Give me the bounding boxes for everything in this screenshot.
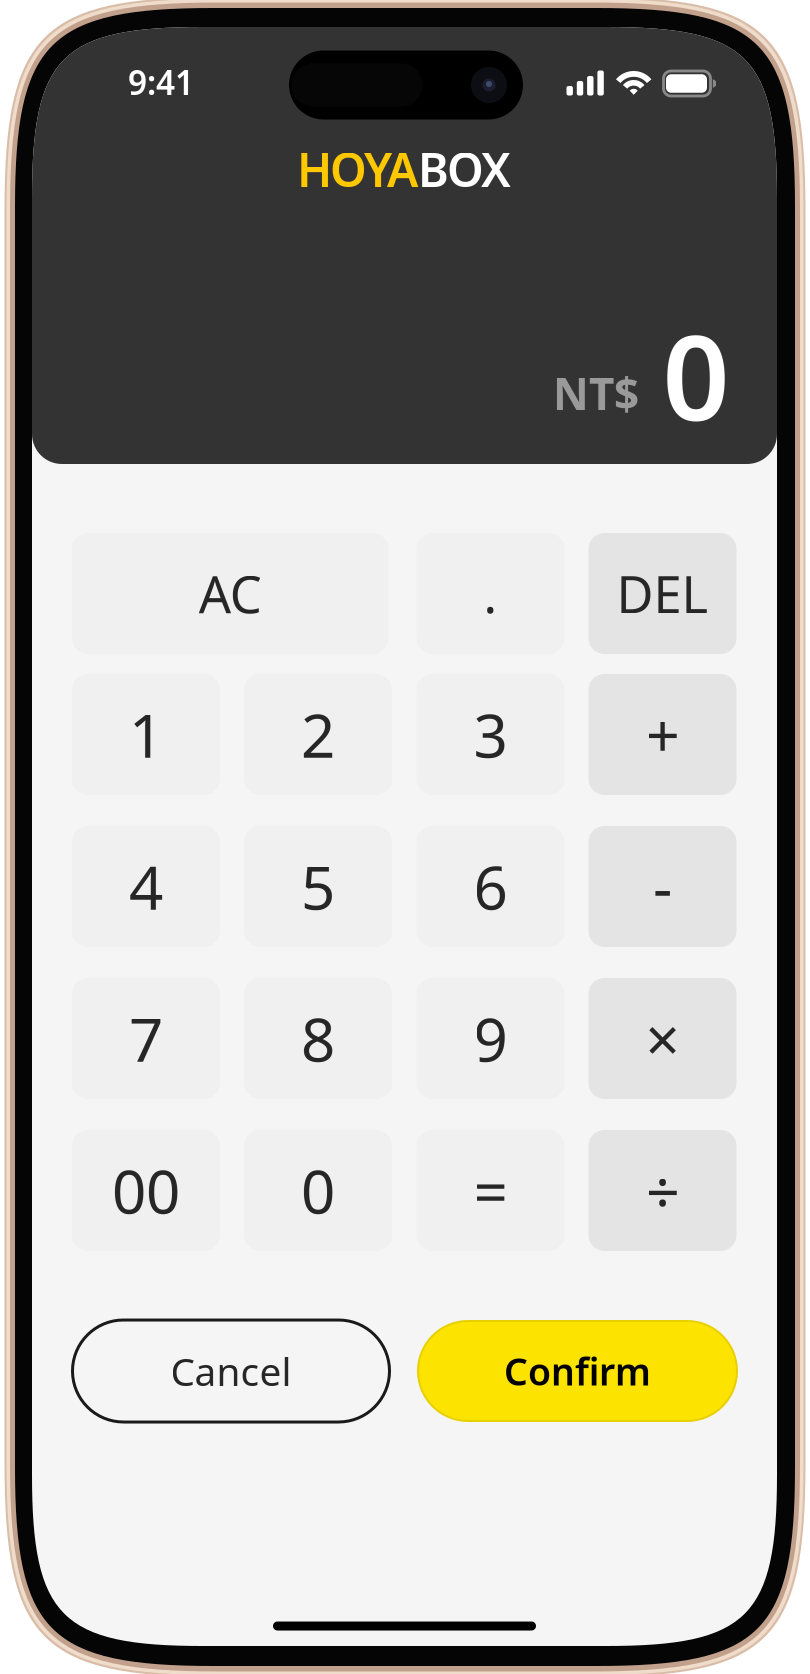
staticText: 2 bbox=[301, 695, 335, 774]
staticText: 9:41 bbox=[128, 60, 194, 104]
button[interactable]: × bbox=[588, 978, 736, 1099]
staticText: 4 bbox=[129, 847, 163, 926]
staticText: HOYA bbox=[297, 138, 418, 200]
staticText: NT$ bbox=[553, 364, 639, 422]
button[interactable]: - bbox=[588, 826, 736, 947]
button[interactable]: 8 bbox=[244, 978, 392, 1099]
button[interactable]: AC bbox=[72, 533, 388, 654]
staticText: . bbox=[483, 560, 497, 627]
staticText: 5 bbox=[301, 847, 335, 926]
staticText: 0 bbox=[301, 1151, 335, 1230]
button[interactable]: 7 bbox=[72, 978, 220, 1099]
staticText: - bbox=[653, 847, 672, 926]
staticText: 00 bbox=[112, 1151, 180, 1230]
staticText: × bbox=[645, 999, 679, 1078]
button[interactable]: 1 bbox=[72, 674, 220, 795]
button[interactable]: 4 bbox=[72, 826, 220, 947]
button[interactable]: ÷ bbox=[588, 1130, 736, 1251]
staticText: 6 bbox=[473, 847, 507, 926]
button[interactable]: 5 bbox=[244, 826, 392, 947]
button[interactable]: 00 bbox=[72, 1130, 220, 1251]
staticText: 3 bbox=[473, 695, 507, 774]
staticText: Confirm bbox=[504, 1346, 651, 1396]
staticText: 8 bbox=[301, 999, 335, 1078]
button[interactable]: 2 bbox=[244, 674, 392, 795]
button[interactable]: Cancel bbox=[72, 1320, 389, 1422]
staticText: 7 bbox=[129, 999, 163, 1078]
staticText: = bbox=[473, 1151, 507, 1230]
button[interactable]: 6 bbox=[416, 826, 564, 947]
button[interactable]: DEL bbox=[588, 533, 736, 654]
staticText: + bbox=[645, 695, 679, 774]
button[interactable]: 3 bbox=[416, 674, 564, 795]
button[interactable]: . bbox=[416, 533, 564, 654]
staticText: AC bbox=[199, 560, 262, 627]
button[interactable]: = bbox=[416, 1130, 564, 1251]
staticText: 1 bbox=[129, 695, 163, 774]
staticText: Cancel bbox=[170, 1345, 291, 1397]
button[interactable]: 9 bbox=[416, 978, 564, 1099]
staticText: BOX bbox=[418, 138, 511, 200]
button[interactable]: 0 bbox=[244, 1130, 392, 1251]
button[interactable]: + bbox=[588, 674, 736, 795]
staticText: DEL bbox=[616, 560, 708, 627]
staticText: 0 bbox=[662, 297, 729, 453]
staticText: 9 bbox=[473, 999, 507, 1078]
staticText: ÷ bbox=[645, 1151, 679, 1230]
button[interactable]: Confirm bbox=[417, 1320, 738, 1422]
